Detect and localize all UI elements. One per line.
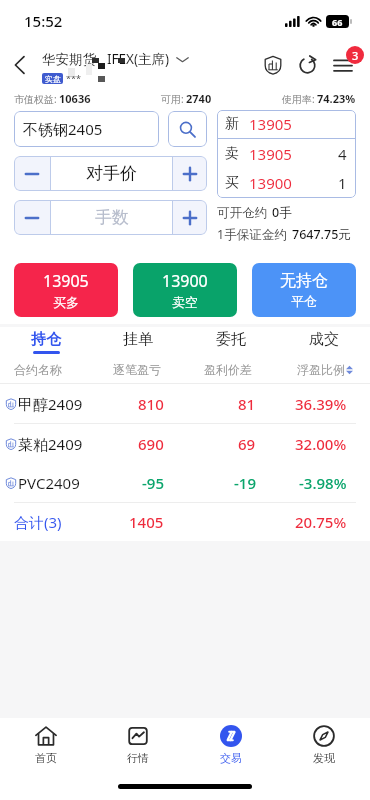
button[interactable]: 行情 <box>92 718 184 772</box>
staticText: 36.39% <box>295 394 347 414</box>
staticText: *** <box>66 72 81 84</box>
button[interactable]: 成交 <box>277 327 370 356</box>
button[interactable]: 挂单 <box>92 327 184 356</box>
staticText: -19 <box>234 473 256 493</box>
staticText: 13905 <box>43 270 89 292</box>
button[interactable]: 13900 <box>133 263 237 317</box>
button[interactable]: 不锈钢2405 <box>14 111 159 147</box>
staticText: 实盘 <box>45 74 61 84</box>
button[interactable]: Stop loss settings <box>256 48 290 82</box>
staticText: 15:52 <box>24 11 63 31</box>
staticText: 690 <box>138 434 164 454</box>
staticText: 华安期货 <box>42 51 96 68</box>
staticText: PVC2409 <box>18 473 80 493</box>
button[interactable]: Decrease <box>14 156 50 191</box>
staticText: 10636 <box>59 91 91 106</box>
staticText: 不锈钢2405 <box>23 119 103 139</box>
button[interactable]: 首页 <box>0 718 92 772</box>
button[interactable]: Increase <box>173 200 207 235</box>
button[interactable]: 委托 <box>184 327 277 356</box>
staticText: 4 <box>338 144 347 164</box>
staticText: 74.23% <box>317 91 356 106</box>
staticText: 行情 <box>127 751 149 765</box>
staticText: 挂单 <box>123 330 153 349</box>
staticText: 32.00% <box>295 434 347 454</box>
button[interactable]: 无持仓 <box>252 263 356 317</box>
staticText: 13905 <box>249 144 292 164</box>
staticText: 对手价 <box>86 163 137 184</box>
staticText: 13900 <box>249 173 292 193</box>
staticText: 手数 <box>95 207 129 228</box>
staticText: 浮盈比例 <box>297 362 345 377</box>
staticText: 0手 <box>272 204 292 221</box>
staticText: 使用率: <box>282 92 315 106</box>
staticText: -3.98% <box>299 473 347 493</box>
staticText: 可开仓约 <box>217 205 267 221</box>
staticText: 1手保证金约 <box>217 226 287 243</box>
staticText: 7647.75元 <box>292 226 351 243</box>
staticText: 合计(3) <box>14 512 100 532</box>
staticText: 交易 <box>220 751 242 765</box>
staticText: 买多 <box>53 294 79 310</box>
button[interactable]: Search <box>168 111 207 147</box>
staticText: 1405 <box>129 512 164 532</box>
staticText: 66 <box>332 16 343 28</box>
staticText: 持仓 <box>31 330 61 349</box>
staticText: 无持仓 <box>280 271 328 291</box>
staticText: 新 <box>225 115 239 133</box>
button[interactable]: 发现 <box>277 718 370 772</box>
staticText: 逐笔盈亏 <box>113 362 161 377</box>
staticText: 首页 <box>35 751 57 765</box>
staticText: IFEX(主席) <box>107 50 170 68</box>
staticText: 3 <box>352 48 359 63</box>
staticText: 卖 <box>225 145 239 163</box>
staticText: 69 <box>238 434 256 454</box>
staticText: 买 <box>225 174 239 192</box>
staticText: 81 <box>238 394 256 414</box>
staticText: 1 <box>338 173 347 193</box>
staticText: 13905 <box>249 114 292 134</box>
staticText: 810 <box>138 394 164 414</box>
button[interactable]: 甲醇2409 <box>0 384 370 423</box>
button[interactable]: Menu, 3 notifications <box>324 46 362 84</box>
staticText: 甲醇2409 <box>18 394 83 414</box>
staticText: 可用: <box>161 92 184 106</box>
button[interactable]: 持仓 <box>0 327 92 356</box>
button[interactable]: Back <box>0 45 40 85</box>
button[interactable]: 对手价 <box>51 156 172 191</box>
staticText: -95 <box>142 473 164 493</box>
staticText: 合约名称 <box>14 362 74 377</box>
staticText: 委托 <box>216 330 246 349</box>
button[interactable]: PVC2409 <box>0 463 370 502</box>
button[interactable]: 手数 <box>51 200 172 235</box>
button[interactable]: 菜粕2409 <box>0 424 370 463</box>
button[interactable]: Refresh <box>290 48 324 82</box>
button[interactable]: Decrease <box>14 200 50 235</box>
staticText: 发现 <box>313 751 335 765</box>
button[interactable]: 交易 <box>184 718 277 772</box>
staticText: 平仓 <box>291 293 317 309</box>
staticText: 成交 <box>309 330 339 349</box>
staticText: 2740 <box>186 91 212 106</box>
staticText: 13900 <box>162 270 208 292</box>
button[interactable]: 13905 <box>14 263 118 317</box>
staticText: 20.75% <box>295 512 347 532</box>
staticText: 市值权益: <box>14 92 57 106</box>
staticText: 菜粕2409 <box>18 434 83 454</box>
staticText: 盈利价差 <box>204 362 252 377</box>
staticText: 卖空 <box>172 294 198 310</box>
button[interactable]: Increase <box>173 156 207 191</box>
